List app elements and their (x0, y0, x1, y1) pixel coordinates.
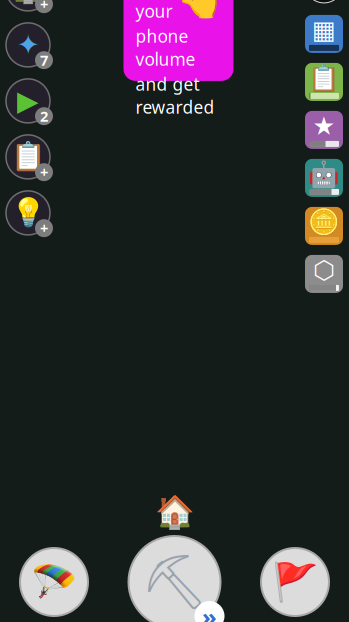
button[interactable]: Flags (261, 548, 329, 616)
staticText: 💡 (10, 197, 45, 229)
staticText: 🚩 (272, 561, 318, 603)
button[interactable]: Supply drop (20, 548, 88, 616)
staticText: ★ (312, 111, 335, 140)
staticText: and get rewarded (135, 72, 214, 118)
button[interactable]: Surveys (305, 63, 343, 101)
button[interactable]: Compass (303, 0, 345, 5)
staticText: 🤖 (308, 159, 340, 188)
staticText: 2 (40, 106, 48, 126)
staticText: to raise your (135, 0, 195, 22)
staticText: + (40, 218, 48, 238)
staticText: 🪙 (308, 207, 340, 236)
staticText: + (40, 0, 48, 14)
staticText: ⛏ (140, 551, 208, 612)
button[interactable]: Ideas (2, 187, 54, 239)
button[interactable]: Apps (305, 15, 343, 53)
staticText: ⬡ (313, 255, 335, 284)
button[interactable]: Dice (305, 255, 343, 293)
button[interactable]: Coins (305, 207, 343, 245)
staticText: » (202, 600, 217, 622)
staticText: ▦ (312, 15, 336, 44)
button[interactable]: Mine (128, 536, 220, 622)
staticText: 🏠 (10, 0, 45, 5)
staticText: 📋 (308, 63, 340, 92)
staticText: ✦ (16, 29, 39, 61)
button[interactable]: Videos (2, 75, 54, 127)
button[interactable]: Bots (305, 159, 343, 197)
staticText: 🏠 (154, 493, 194, 530)
button[interactable]: Tasks (2, 131, 54, 183)
button[interactable]: Featured (305, 111, 343, 149)
staticText: phone volume (135, 24, 195, 70)
staticText: ▶ (17, 85, 39, 117)
staticText: 7 (40, 50, 48, 70)
staticText: 🪂 (31, 561, 77, 603)
button[interactable]: 👆 (123, 0, 233, 81)
button[interactable]: Base (2, 0, 54, 15)
staticText: 👆 (175, 0, 225, 21)
staticText: + (40, 162, 48, 182)
button[interactable]: Boosts (2, 19, 54, 71)
staticText: 📋 (10, 141, 45, 173)
